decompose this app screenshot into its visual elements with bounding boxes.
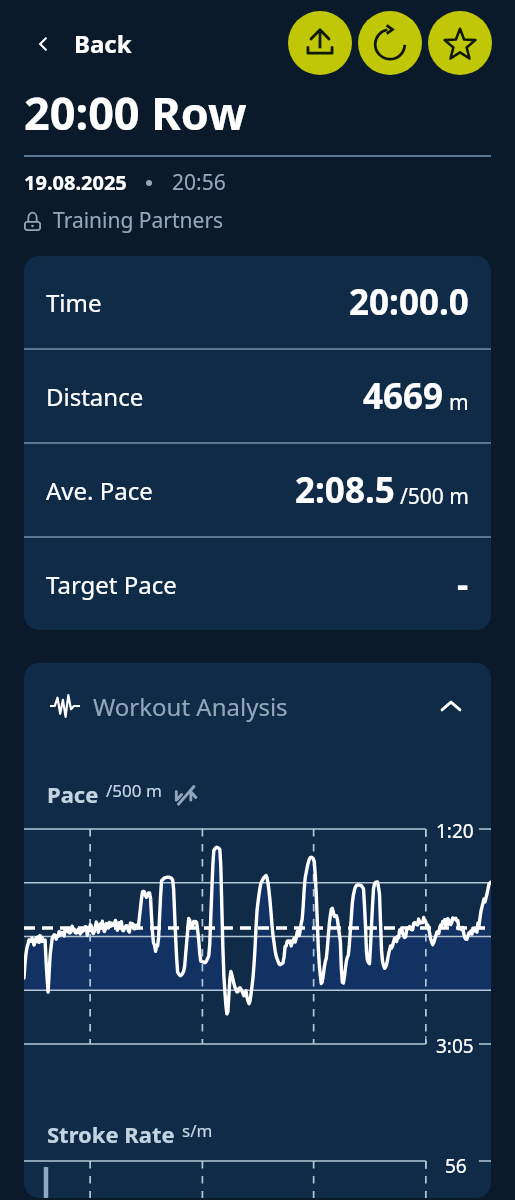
staticText: 20:00.0 (349, 278, 469, 326)
staticText: Back (74, 27, 132, 60)
staticText: Training Partners (53, 206, 224, 235)
staticText: 1:20 (436, 818, 474, 844)
button[interactable]: Target Pace (24, 538, 491, 630)
button[interactable]: Ave. Pace (24, 444, 491, 536)
button[interactable]: Time (24, 256, 491, 348)
staticText: 2:08.5 (295, 466, 395, 514)
staticText: m (449, 388, 469, 417)
staticText: Time (46, 286, 102, 319)
other: Collapse (441, 699, 461, 713)
staticText: /500 m (400, 482, 469, 511)
button[interactable]: Back (26, 19, 140, 68)
staticText: 19.08.2025 (24, 169, 127, 196)
staticText: Target Pace (46, 568, 177, 601)
staticText: /500 m (106, 779, 162, 802)
staticText: 20:00 Row (24, 82, 247, 143)
staticText: Pace (47, 779, 99, 805)
staticText: 4669 (363, 372, 444, 420)
button[interactable]: Favorite (428, 11, 492, 75)
staticText: Distance (46, 380, 144, 413)
button[interactable]: Training Partners (23, 203, 224, 237)
button[interactable]: Repeat workout (358, 11, 422, 75)
staticText: 20:56 (172, 168, 226, 197)
staticText: Ave. Pace (46, 474, 153, 507)
staticText: 3:05 (436, 1033, 474, 1059)
button[interactable]: Share (288, 11, 352, 75)
button[interactable]: Distance (24, 350, 491, 442)
staticText: Stroke Rate (47, 1119, 175, 1145)
staticText: 56 (445, 1153, 467, 1179)
staticText: Workout Analysis (93, 690, 288, 723)
button[interactable]: Workout Analysis (24, 663, 491, 749)
staticText: s/m (182, 1119, 213, 1142)
staticText: - (457, 560, 469, 608)
